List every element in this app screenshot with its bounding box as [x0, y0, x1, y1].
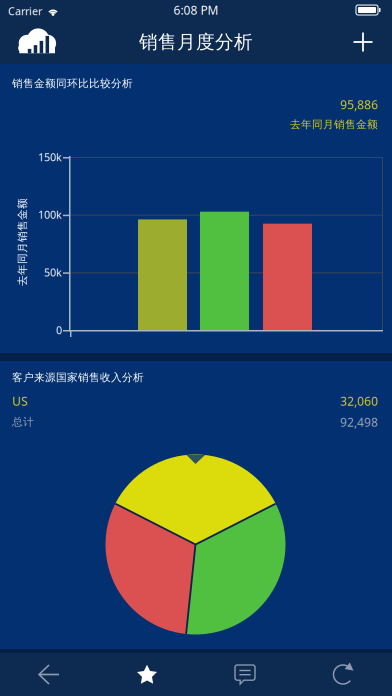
button[interactable]: Dashboard	[9, 20, 64, 64]
staticText: 50k	[44, 265, 62, 279]
staticText: 销售月度分析	[139, 30, 253, 53]
staticText: 150k	[38, 150, 62, 164]
staticText: 6:08 PM	[173, 2, 218, 18]
button[interactable]: Comments	[196, 653, 294, 696]
button[interactable]: Favorite	[98, 653, 196, 696]
staticText: 销售金额同环比比较分析	[12, 77, 133, 90]
button[interactable]: Add	[341, 20, 385, 64]
button[interactable]: Refresh	[294, 653, 392, 696]
staticText: 去年同月销售金额	[0, 235, 66, 248]
staticText: 92,498	[340, 414, 378, 430]
staticText: 100k	[38, 208, 62, 222]
button[interactable]: Back	[0, 653, 98, 696]
staticText: 客户来源国家销售收入分析	[12, 371, 144, 384]
staticText: 0	[56, 323, 62, 337]
staticText: 32,060	[340, 393, 378, 409]
staticText: 95,886	[340, 96, 378, 112]
staticText: US	[12, 393, 28, 409]
staticText: 去年同月销售金额	[290, 118, 378, 131]
staticText: Carrier	[8, 4, 42, 18]
staticText: 总计	[12, 415, 34, 428]
